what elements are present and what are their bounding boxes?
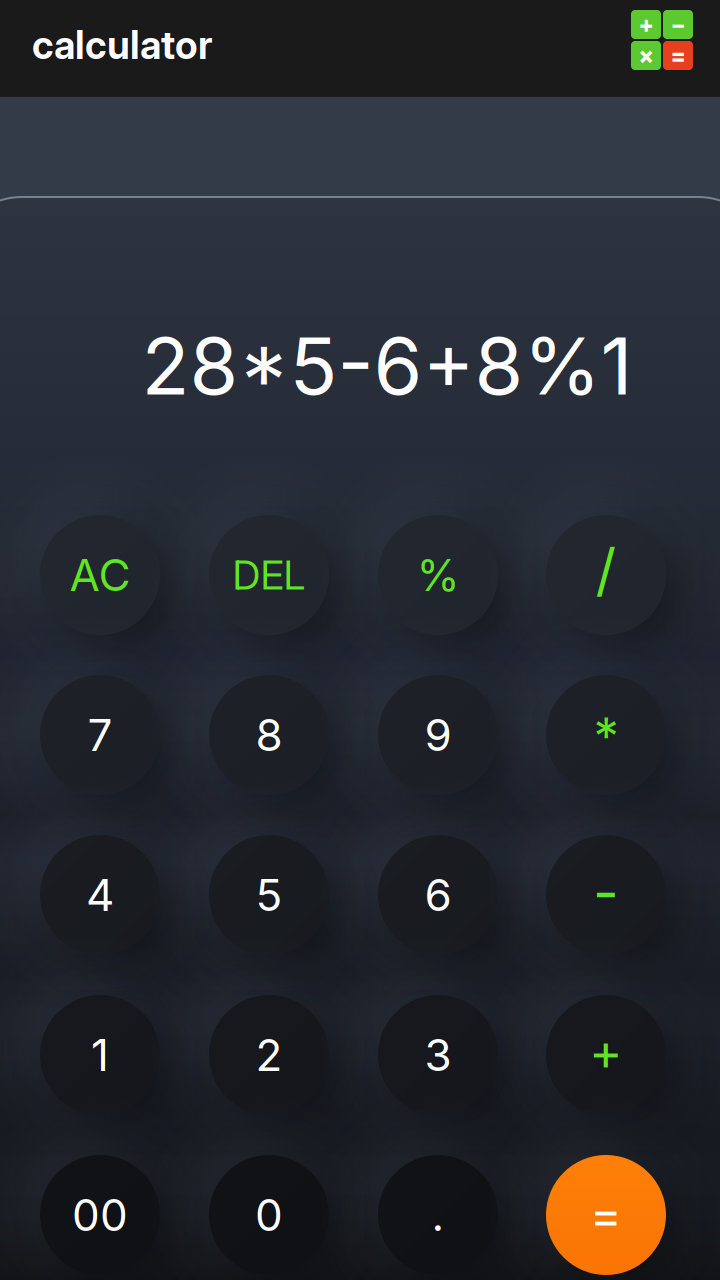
button[interactable]: * bbox=[523, 656, 689, 814]
button[interactable]: 4 bbox=[17, 816, 183, 974]
button[interactable]: + bbox=[523, 976, 689, 1134]
button[interactable]: / bbox=[523, 496, 689, 654]
button[interactable]: - bbox=[523, 816, 689, 974]
button[interactable]: 5 bbox=[186, 816, 352, 974]
staticText: = bbox=[590, 1186, 622, 1244]
staticText: 7 bbox=[87, 708, 112, 762]
button[interactable]: 7 bbox=[17, 656, 183, 814]
button[interactable]: = bbox=[523, 1136, 689, 1280]
button[interactable]: 0 bbox=[186, 1136, 352, 1280]
button[interactable]: 1 bbox=[17, 976, 183, 1134]
staticText: 2 bbox=[255, 1028, 282, 1082]
button[interactable]: . bbox=[355, 1136, 521, 1280]
staticText: 4 bbox=[86, 868, 114, 922]
staticText: / bbox=[595, 535, 616, 605]
staticText: 5 bbox=[255, 868, 282, 922]
staticText: AC bbox=[69, 548, 130, 602]
button[interactable]: AC bbox=[17, 496, 183, 654]
staticText: 0 bbox=[255, 1188, 283, 1242]
staticText: 3 bbox=[424, 1028, 451, 1082]
staticText: 1 bbox=[91, 1028, 109, 1082]
staticText: 6 bbox=[424, 868, 451, 922]
staticText: % bbox=[416, 548, 459, 602]
staticText: + bbox=[638, 11, 653, 38]
button[interactable]: 6 bbox=[355, 816, 521, 974]
staticText: × bbox=[638, 42, 653, 69]
staticText: 8 bbox=[255, 708, 282, 762]
staticText: 00 bbox=[72, 1188, 128, 1242]
button[interactable]: calculator bbox=[32, 15, 232, 75]
staticText: * bbox=[593, 705, 618, 767]
button[interactable]: 00 bbox=[17, 1136, 183, 1280]
button[interactable]: % bbox=[355, 496, 521, 654]
staticText: 28*5-6+8%1 bbox=[141, 318, 632, 414]
staticText: – bbox=[672, 11, 683, 38]
staticText: = bbox=[670, 42, 685, 69]
button[interactable]: DEL bbox=[186, 496, 352, 654]
button[interactable]: 2 bbox=[186, 976, 352, 1134]
button[interactable]: Calculator keypad bbox=[631, 10, 693, 70]
button[interactable]: 8 bbox=[186, 656, 352, 814]
button[interactable]: 9 bbox=[355, 656, 521, 814]
staticText: calculator bbox=[32, 22, 213, 68]
staticText: DEL bbox=[232, 551, 305, 599]
button[interactable]: 3 bbox=[355, 976, 521, 1134]
staticText: + bbox=[589, 1020, 623, 1082]
staticText: . bbox=[431, 1188, 444, 1242]
staticText: - bbox=[593, 858, 619, 926]
staticText: 9 bbox=[424, 708, 451, 762]
